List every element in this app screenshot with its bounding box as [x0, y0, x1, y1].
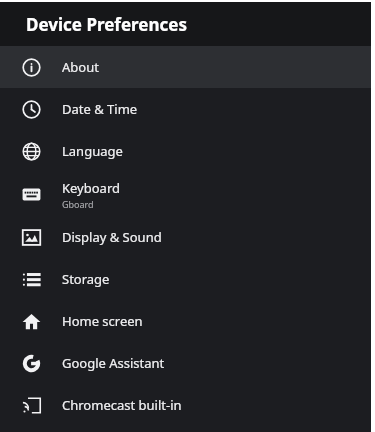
button[interactable]: Language [0, 130, 371, 172]
staticText: Gboard [62, 198, 94, 210]
staticText: Date & Time [62, 100, 138, 118]
staticText: Language [62, 142, 123, 160]
staticText: Device Preferences [26, 13, 187, 36]
button[interactable]: Chromecast built-in [0, 384, 371, 426]
staticText: Home screen [62, 312, 143, 330]
staticText: Display & Sound [62, 228, 162, 246]
button[interactable]: Google Assistant [0, 342, 371, 384]
button[interactable]: About [0, 46, 371, 88]
staticText: Storage [62, 270, 110, 288]
staticText: About [62, 58, 99, 76]
staticText: Keyboard [62, 179, 121, 197]
button[interactable]: Display & Sound [0, 216, 371, 258]
button[interactable]: Date & Time [0, 88, 371, 130]
button[interactable]: Storage [0, 258, 371, 300]
staticText: Google Assistant [62, 354, 165, 372]
staticText: Chromecast built-in [62, 396, 182, 414]
button[interactable]: Home screen [0, 300, 371, 342]
button[interactable]: Keyboard [0, 172, 371, 216]
